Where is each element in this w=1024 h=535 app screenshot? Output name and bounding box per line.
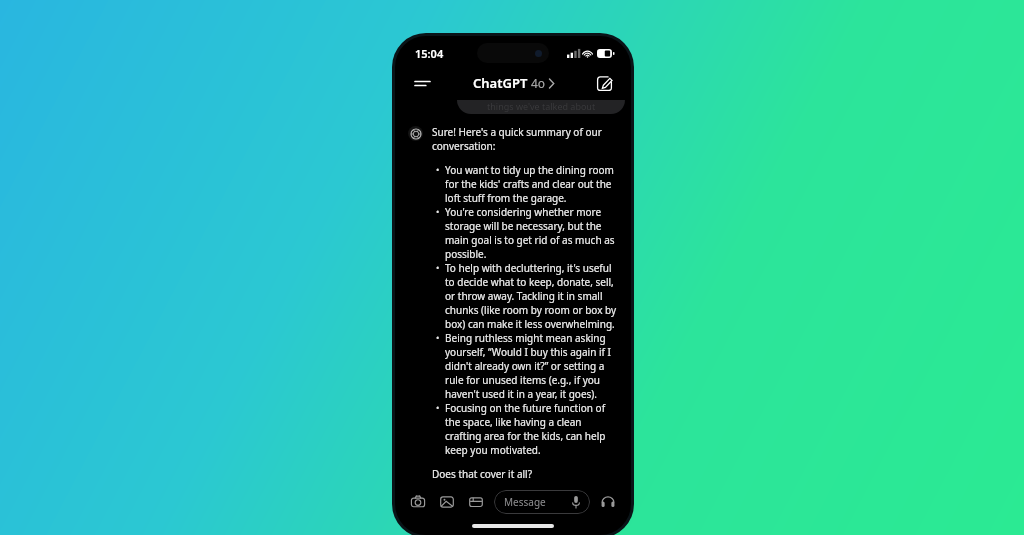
staticText: Does that cover it all?: [432, 467, 532, 481]
staticText: •: [436, 261, 440, 273]
staticText: You want to tidy up the dining room for …: [445, 163, 617, 205]
button[interactable]: Voice mode: [596, 490, 620, 514]
staticText: 15:04: [415, 46, 444, 61]
button[interactable]: Photos: [435, 490, 459, 514]
staticText: You're considering whether more storage …: [445, 205, 617, 261]
staticText: •: [436, 401, 440, 413]
button[interactable]: Camera: [406, 490, 430, 514]
staticText: Sure! Here's a quick summary of our conv…: [432, 125, 617, 153]
button[interactable]: Message: [494, 490, 590, 514]
button[interactable]: Files: [464, 490, 488, 514]
staticText: Message: [504, 495, 546, 509]
button[interactable]: New chat: [589, 68, 619, 98]
staticText: Being ruthless might mean asking yoursel…: [445, 331, 617, 401]
staticText: 4o: [531, 75, 546, 91]
button[interactable]: ChatGPT: [467, 71, 560, 95]
staticText: •: [436, 331, 440, 343]
button[interactable]: Menu: [407, 68, 437, 98]
staticText: things we've talked about: [487, 100, 596, 112]
staticText: To help with decluttering, it's useful t…: [445, 261, 617, 331]
staticText: ChatGPT: [473, 74, 528, 92]
staticText: •: [436, 205, 440, 217]
staticText: •: [436, 163, 440, 175]
staticText: Focusing on the future function of the s…: [445, 401, 617, 457]
